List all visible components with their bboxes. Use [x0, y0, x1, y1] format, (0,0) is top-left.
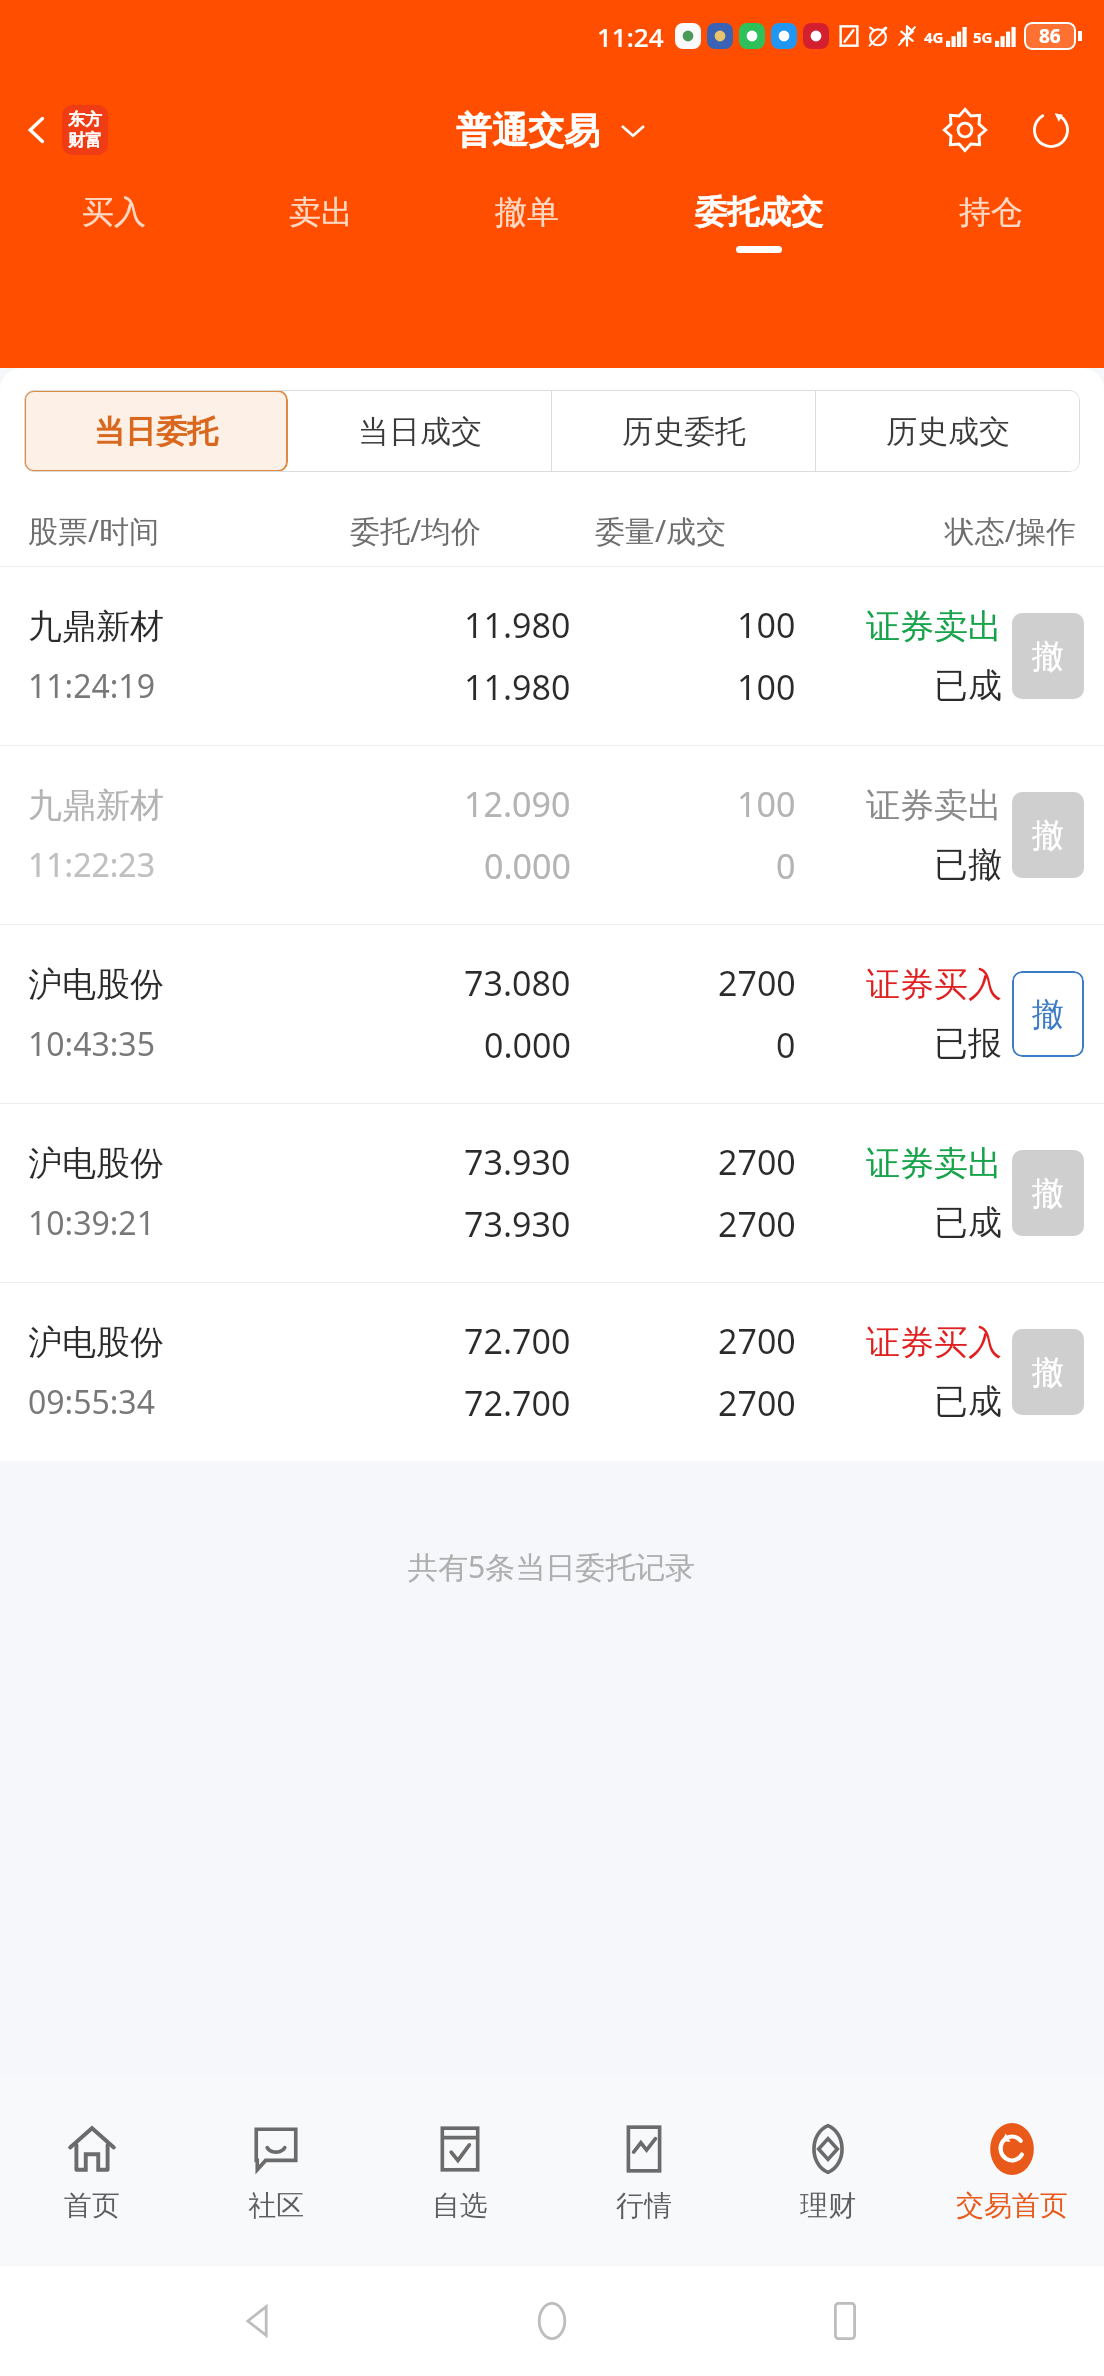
button[interactable]: 主页 — [518, 2287, 586, 2355]
staticText: 09:55:34 — [28, 1380, 155, 1424]
button[interactable]: 当日委托 — [24, 390, 288, 472]
button[interactable]: 撤单 — [1012, 613, 1084, 699]
button[interactable]: 首页 — [0, 2076, 184, 2266]
staticText: 2700 — [718, 1318, 796, 1364]
staticText: 12.090 — [464, 781, 571, 827]
button[interactable]: 持仓 — [888, 192, 1094, 302]
button[interactable]: 沪电股份 — [0, 925, 1104, 1103]
staticText: 理财 — [800, 2188, 856, 2223]
staticText: 委托成交 — [695, 192, 823, 232]
staticText: 已成 — [934, 1380, 1002, 1423]
staticText: 2700 — [718, 960, 796, 1006]
staticText: 100 — [737, 602, 796, 648]
staticText: 首页 — [64, 2188, 120, 2223]
staticText: 沪电股份 — [28, 963, 164, 1006]
staticText: 证券卖出 — [866, 605, 1002, 648]
staticText: 行情 — [616, 2188, 672, 2223]
staticText: 买入 — [82, 192, 146, 232]
staticText: 历史成交 — [886, 412, 1010, 451]
button[interactable]: 行情 — [552, 2076, 736, 2266]
staticText: 持仓 — [959, 192, 1023, 232]
staticText: 5G — [973, 27, 993, 47]
staticText: 共有5条当日委托记录 — [408, 1546, 696, 1587]
staticText: 73.930 — [464, 1201, 571, 1247]
staticText: 2700 — [718, 1139, 796, 1185]
button[interactable]: 理财 — [736, 2076, 920, 2266]
staticText: 11.980 — [464, 664, 571, 710]
staticText: 11:24 — [597, 19, 664, 54]
button[interactable]: 沪电股份 — [0, 1104, 1104, 1282]
staticText: 已成 — [934, 1201, 1002, 1244]
staticText: 证券买入 — [866, 1321, 1002, 1364]
staticText: 100 — [737, 781, 796, 827]
button[interactable]: 设置 — [934, 99, 996, 161]
staticText: 11.980 — [464, 602, 571, 648]
staticText: 状态/操作 — [780, 510, 1076, 551]
button[interactable]: 撤单 — [1012, 792, 1084, 878]
staticText: 0 — [776, 843, 796, 889]
staticText: 72.700 — [464, 1380, 571, 1426]
staticText: 沪电股份 — [28, 1321, 164, 1364]
button[interactable]: 普通交易 — [456, 108, 648, 153]
button[interactable]: 当日成交 — [288, 390, 552, 472]
staticText: 10:39:21 — [28, 1201, 155, 1245]
staticText: 自选 — [432, 2188, 488, 2223]
button[interactable]: 买入 — [10, 192, 217, 302]
button[interactable]: 九鼎新材 — [0, 746, 1104, 924]
button[interactable]: 返回 东方财富 — [14, 99, 114, 161]
staticText: 社区 — [248, 2188, 304, 2223]
staticText: 九鼎新材 — [28, 605, 164, 648]
button[interactable]: 自选 — [368, 2076, 552, 2266]
staticText: 东方 — [68, 109, 102, 130]
button[interactable]: 最近任务 — [811, 2287, 879, 2355]
staticText: 100 — [737, 664, 796, 710]
staticText: 撤 — [1032, 1173, 1064, 1213]
button[interactable]: 历史成交 — [816, 390, 1080, 472]
staticText: 撤 — [1032, 1352, 1064, 1392]
button[interactable]: 交易首页 — [920, 2076, 1104, 2266]
staticText: 当日委托 — [94, 412, 218, 451]
button[interactable]: 历史委托 — [552, 390, 816, 472]
staticText: 已报 — [934, 1022, 1002, 1065]
staticText: 已撤 — [934, 843, 1002, 886]
staticText: 卖出 — [289, 192, 353, 232]
staticText: 撤 — [1032, 636, 1064, 676]
staticText: 11:22:23 — [28, 843, 155, 887]
staticText: 0.000 — [484, 1022, 571, 1068]
staticText: 证券卖出 — [866, 784, 1002, 827]
staticText: 委托/均价 — [290, 510, 541, 551]
button[interactable]: 撤单 — [424, 192, 630, 302]
button[interactable]: 卖出 — [217, 192, 424, 302]
button[interactable]: 九鼎新材 — [0, 567, 1104, 745]
button[interactable]: 撤单 — [1012, 971, 1084, 1057]
staticText: 11:24:19 — [28, 664, 155, 708]
button[interactable]: 撤单 — [1012, 1329, 1084, 1415]
staticText: 72.700 — [464, 1318, 571, 1364]
button[interactable]: 撤单 — [1012, 1150, 1084, 1236]
button[interactable]: 社区 — [184, 2076, 368, 2266]
button[interactable]: 委托成交 — [630, 192, 888, 302]
staticText: 股票/时间 — [28, 510, 290, 551]
staticText: 0.000 — [484, 843, 571, 889]
staticText: 历史委托 — [622, 412, 746, 451]
button[interactable]: 沪电股份 — [0, 1283, 1104, 1461]
staticText: 撤 — [1032, 815, 1064, 855]
staticText: 普通交易 — [456, 108, 600, 153]
staticText: 86 — [1039, 23, 1061, 49]
staticText: 交易首页 — [956, 2188, 1068, 2223]
staticText: 2700 — [718, 1380, 796, 1426]
staticText: 委量/成交 — [541, 510, 780, 551]
staticText: 撤单 — [495, 192, 559, 232]
staticText: 沪电股份 — [28, 1142, 164, 1185]
staticText: 财富 — [68, 130, 102, 151]
staticText: 已成 — [934, 664, 1002, 707]
button[interactable]: 刷新 — [1020, 99, 1082, 161]
button[interactable]: 返回 — [225, 2287, 293, 2355]
staticText: 2700 — [718, 1201, 796, 1247]
staticText: 10:43:35 — [28, 1022, 155, 1066]
staticText: 证券卖出 — [866, 1142, 1002, 1185]
staticText: 73.080 — [464, 960, 571, 1006]
staticText: 4G — [924, 27, 944, 47]
staticText: 证券买入 — [866, 963, 1002, 1006]
staticText: 九鼎新材 — [28, 784, 164, 827]
